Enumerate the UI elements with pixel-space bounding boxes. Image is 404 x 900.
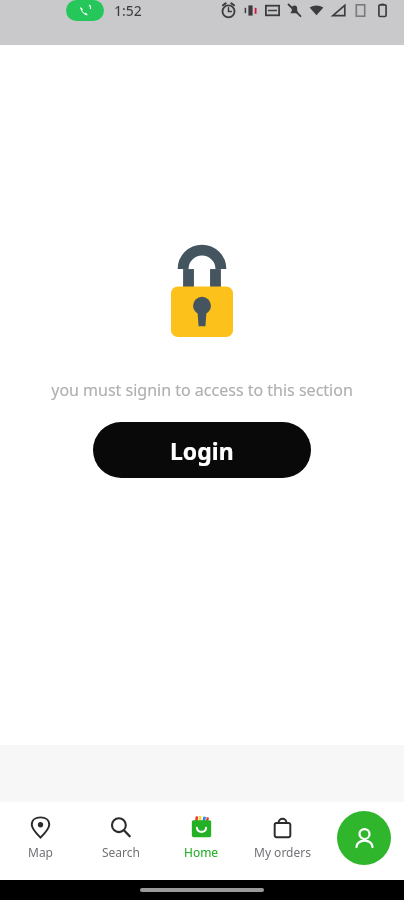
button[interactable]: Profile — [337, 811, 391, 865]
staticText: 1:52 — [114, 1, 142, 20]
staticText: Home — [184, 844, 219, 860]
button[interactable]: Home — [161, 814, 242, 860]
button[interactable]: Search — [80, 814, 161, 860]
staticText: you must signin to access to this sectio… — [48, 379, 356, 401]
staticText: Map — [28, 844, 53, 860]
button[interactable]: My orders — [242, 814, 323, 860]
staticText: Login — [170, 435, 234, 466]
staticText: My orders — [254, 844, 311, 860]
button[interactable]: Map — [0, 814, 80, 860]
button[interactable]: Login — [93, 422, 311, 478]
staticText: Search — [102, 844, 140, 860]
